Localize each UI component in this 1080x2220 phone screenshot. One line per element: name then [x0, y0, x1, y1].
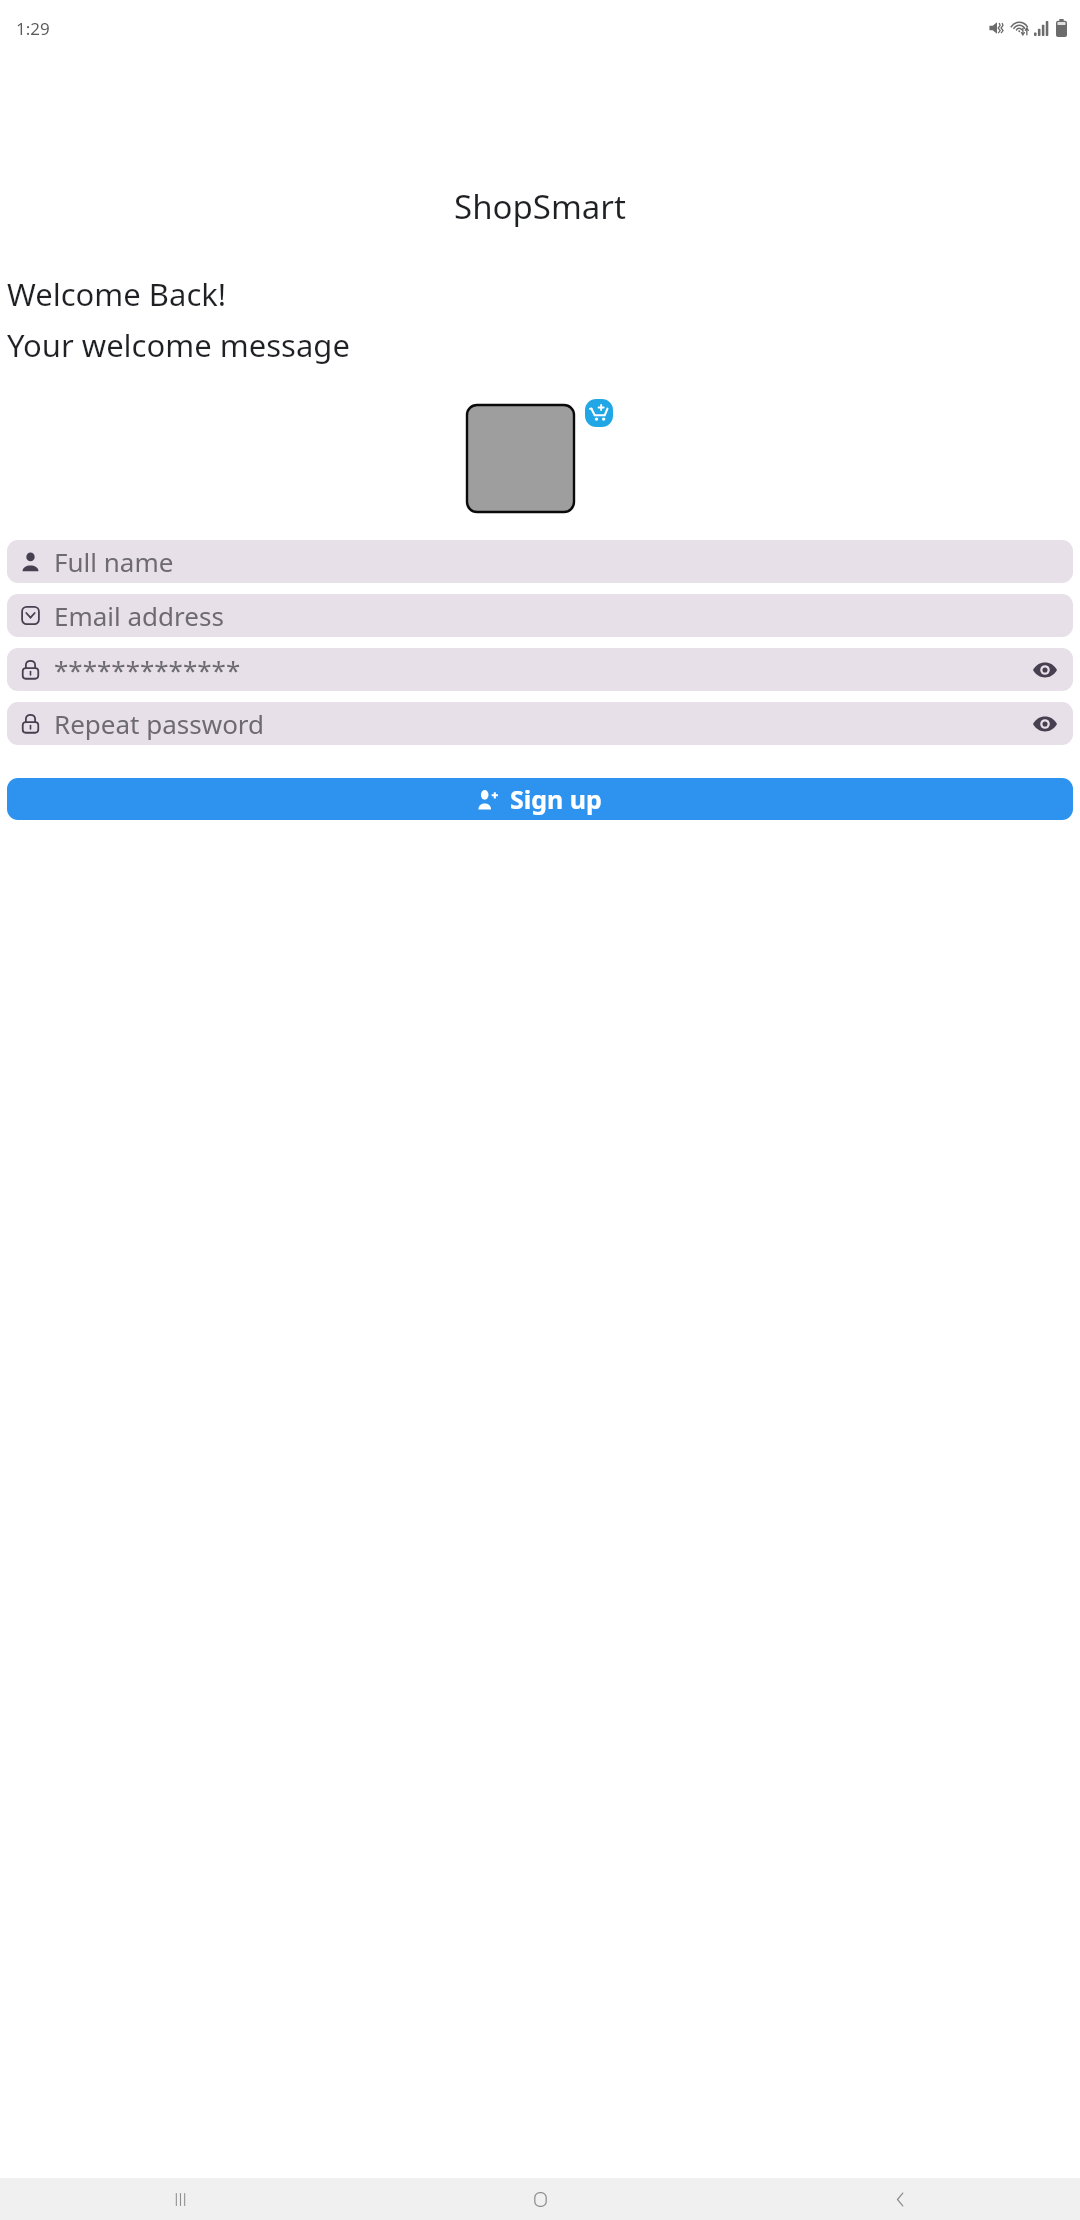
staticText: Full name [54, 544, 1060, 579]
button[interactable]: Show password [1030, 655, 1060, 685]
staticText: Repeat password [54, 706, 1030, 741]
staticText: ************* [54, 652, 1030, 687]
staticText: 1:29 [16, 17, 50, 40]
staticText: ShopSmart [0, 184, 1080, 229]
button[interactable]: Show password [1030, 709, 1060, 739]
button[interactable]: Add to cart [585, 399, 613, 427]
button[interactable]: Full name [7, 540, 1073, 583]
button[interactable]: Back [720, 2178, 1080, 2220]
staticText: Sign up [510, 782, 602, 816]
staticText: Welcome Back! [7, 273, 227, 315]
button[interactable]: Home [360, 2178, 720, 2220]
staticText: Email address [54, 598, 1060, 633]
button[interactable]: Repeat password [7, 702, 1073, 745]
button[interactable]: Email address [7, 594, 1073, 637]
staticText: Your welcome message [7, 324, 350, 366]
button[interactable]: ************* [7, 648, 1073, 691]
button[interactable]: Recents [0, 2178, 360, 2220]
button[interactable]: Sign up [7, 778, 1073, 820]
